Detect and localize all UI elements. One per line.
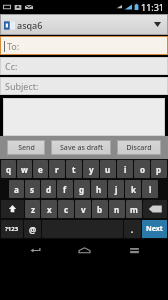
- staticText: w: [21, 164, 28, 175]
- button[interactable]: Discard: [117, 140, 161, 155]
- staticText: Send: [18, 143, 35, 153]
- staticText: 11:31: [141, 1, 165, 13]
- button[interactable]: d: [41, 180, 56, 198]
- staticText: i: [124, 164, 127, 175]
- button[interactable]: r: [49, 160, 65, 178]
- staticText: x: [47, 204, 52, 215]
- button[interactable]: Cc:: [0, 57, 168, 75]
- staticText: v: [81, 204, 86, 215]
- staticText: d: [46, 184, 52, 195]
- button[interactable]: h: [91, 180, 107, 198]
- button[interactable]: Back: [20, 240, 50, 260]
- staticText: ?123: [5, 225, 19, 233]
- button[interactable]: j: [108, 180, 124, 198]
- button[interactable]: m: [126, 200, 142, 218]
- button[interactable]: Next: [142, 220, 167, 238]
- button[interactable]: @: [24, 220, 41, 238]
- staticText: Discard: [126, 143, 152, 153]
- staticText: e: [38, 164, 43, 175]
- button[interactable]: .: [124, 220, 141, 238]
- button[interactable]: ?123: [1, 220, 23, 238]
- button[interactable]: c: [58, 200, 74, 218]
- button[interactable]: a: [9, 180, 24, 198]
- button[interactable]: Save as draft: [51, 140, 111, 155]
- staticText: g: [79, 184, 85, 195]
- button[interactable]: o: [134, 160, 150, 178]
- button[interactable]: t: [66, 160, 82, 178]
- staticText: Subject:: [5, 80, 39, 92]
- button[interactable]: z: [25, 200, 40, 218]
- staticText: c: [64, 204, 69, 215]
- button[interactable]: Home: [69, 240, 99, 260]
- button[interactable]: u: [100, 160, 116, 178]
- button[interactable]: y: [83, 160, 99, 178]
- staticText: asqa6: [17, 19, 43, 31]
- button[interactable]: Send: [7, 140, 45, 155]
- button[interactable]: p: [151, 160, 167, 178]
- staticText: l: [149, 184, 152, 195]
- staticText: a: [14, 184, 19, 195]
- button[interactable]: e: [33, 160, 48, 178]
- staticText: u: [105, 164, 111, 175]
- staticText: .: [131, 224, 134, 235]
- button[interactable]: s: [25, 180, 40, 198]
- button[interactable]: asqa6: [0, 14, 168, 35]
- button[interactable]: n: [109, 200, 125, 218]
- staticText: f: [63, 184, 67, 195]
- staticText: @: [29, 224, 37, 235]
- staticText: p: [156, 164, 162, 175]
- button[interactable]: Subject:: [0, 77, 168, 95]
- staticText: m: [130, 204, 138, 215]
- button[interactable]: x: [41, 200, 57, 218]
- staticText: h: [96, 184, 102, 195]
- staticText: o: [140, 164, 145, 175]
- staticText: Save as draft: [60, 143, 103, 153]
- button[interactable]: v: [75, 200, 91, 218]
- staticText: t: [72, 164, 76, 175]
- staticText: q: [6, 164, 12, 175]
- button[interactable]: k: [125, 180, 141, 198]
- staticText: k: [131, 184, 136, 195]
- staticText: z: [31, 204, 35, 215]
- button[interactable]: q: [1, 160, 16, 178]
- button[interactable]: To:: [0, 36, 168, 55]
- button[interactable]: i: [117, 160, 133, 178]
- staticText: j: [115, 184, 118, 195]
- staticText: n: [114, 204, 120, 215]
- staticText: b: [97, 204, 103, 215]
- button[interactable]: [3, 98, 165, 136]
- button[interactable]: Backspace: [143, 200, 167, 218]
- staticText: r: [55, 164, 59, 175]
- staticText: Cc:: [5, 60, 18, 72]
- button[interactable]: l: [142, 180, 158, 198]
- button[interactable]: b: [92, 200, 108, 218]
- staticText: Next: [146, 224, 163, 234]
- button[interactable]: f: [57, 180, 73, 198]
- button[interactable]: g: [74, 180, 90, 198]
- button[interactable]: Shift: [1, 200, 24, 218]
- button[interactable]: Recent apps: [119, 240, 149, 260]
- staticText: y: [89, 164, 94, 175]
- staticText: s: [30, 184, 35, 195]
- staticText: To:: [7, 40, 20, 52]
- button[interactable]: w: [17, 160, 32, 178]
